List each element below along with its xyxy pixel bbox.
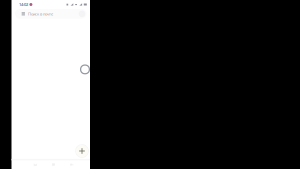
button[interactable]: Compose <box>75 144 89 158</box>
staticText: 14:02 <box>19 2 28 7</box>
button[interactable]: Поиск в почте <box>15 9 87 19</box>
staticText: Поиск в почте <box>28 11 53 16</box>
